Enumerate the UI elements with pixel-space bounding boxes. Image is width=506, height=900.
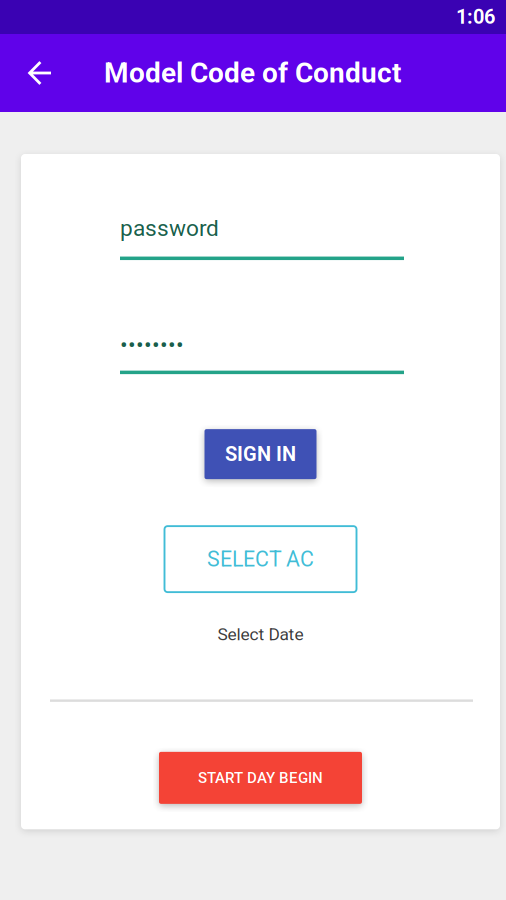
staticText: SELECT AC — [207, 547, 314, 572]
staticText: Select Date — [217, 624, 303, 644]
staticText: Model Code of Conduct — [104, 57, 401, 89]
staticText: password — [120, 215, 219, 242]
button[interactable]: START DAY BEGIN — [159, 752, 362, 804]
button[interactable]: SELECT AC — [164, 526, 356, 592]
staticText: 1:06 — [456, 5, 495, 29]
button[interactable]: SIGN IN — [204, 429, 316, 479]
staticText: •••••••• — [120, 332, 184, 359]
staticText: SIGN IN — [225, 442, 296, 466]
staticText: START DAY BEGIN — [198, 769, 323, 787]
button[interactable]: Back — [14, 34, 66, 112]
